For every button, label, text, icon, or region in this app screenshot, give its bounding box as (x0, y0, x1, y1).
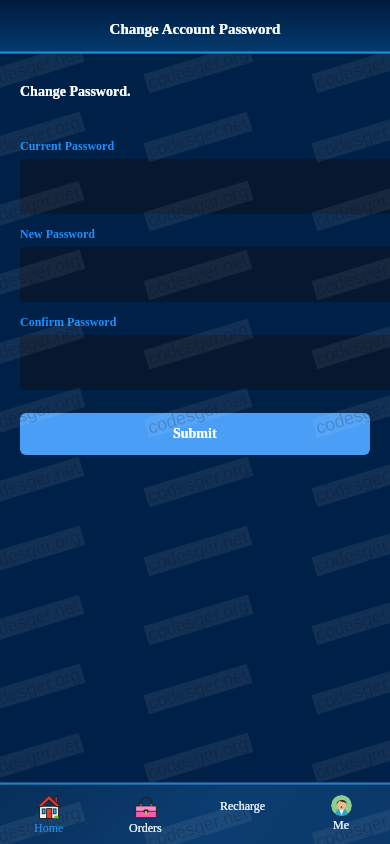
staticText: codesger.net (145, 526, 251, 576)
staticText: codesger.org (313, 250, 390, 300)
staticText: Change Account Password (0, 21, 390, 38)
staticText: codesger.org (0, 388, 84, 438)
staticText: codesger.net (313, 457, 390, 507)
staticText: codesger.net (313, 595, 390, 645)
staticText: codesger.net (0, 181, 83, 231)
staticText: codesger.net (0, 457, 83, 507)
staticText: codesger.org (145, 733, 252, 783)
staticText: codesger.net (145, 250, 251, 300)
staticText: codesger.net (0, 733, 83, 783)
button[interactable]: Orders (97, 782, 194, 844)
button[interactable]: Home (0, 782, 97, 844)
other: Home (37, 795, 61, 819)
staticText: codesger.net (145, 112, 251, 162)
staticText: codesger.org (313, 802, 390, 844)
staticText: codesger.net (145, 388, 251, 438)
staticText: codesger.net (145, 664, 251, 714)
staticText: Confirm Password (20, 315, 117, 328)
staticText: codesger.net (313, 319, 390, 369)
other: Me (331, 795, 352, 816)
staticText: codesger.org (313, 112, 390, 162)
staticText: codesger.net (313, 43, 390, 93)
staticText: Orders (129, 821, 162, 834)
staticText: codesger.org (145, 595, 252, 645)
staticText: Home (34, 821, 64, 834)
staticText: codesger.net (313, 181, 390, 231)
staticText: New Password (20, 227, 95, 240)
staticText: codesger.org (313, 526, 390, 576)
button[interactable]: Submit (20, 413, 370, 455)
staticText: codesger.net (313, 733, 390, 783)
staticText: codesger.org (0, 250, 84, 300)
staticText: Recharge (220, 799, 266, 812)
staticText: codesger.net (0, 319, 83, 369)
button[interactable] (20, 247, 390, 302)
other: Orders (134, 795, 158, 819)
staticText: codesger.org (145, 319, 252, 369)
staticText: codesger.org (145, 181, 252, 231)
staticText: codesger.org (0, 664, 84, 714)
staticText: codesger.org (0, 526, 84, 576)
button[interactable]: Recharge (194, 782, 292, 844)
button[interactable] (20, 159, 390, 214)
staticText: Submit (173, 426, 217, 442)
staticText: codesger.org (313, 388, 390, 438)
staticText: codesger.org (313, 664, 390, 714)
staticText: codesger.net (0, 595, 83, 645)
button[interactable]: Me (292, 782, 390, 844)
staticText: codesger.net (0, 43, 83, 93)
staticText: Change Password. (20, 84, 131, 100)
button[interactable] (20, 335, 390, 390)
staticText: Current Password (20, 139, 115, 152)
staticText: Me (333, 818, 349, 831)
staticText: codesger.org (145, 43, 252, 93)
staticText: codesger.org (145, 457, 252, 507)
staticText: codesger.org (0, 802, 84, 844)
staticText: codesger.org (0, 112, 84, 162)
staticText: codesger.net (145, 802, 251, 844)
